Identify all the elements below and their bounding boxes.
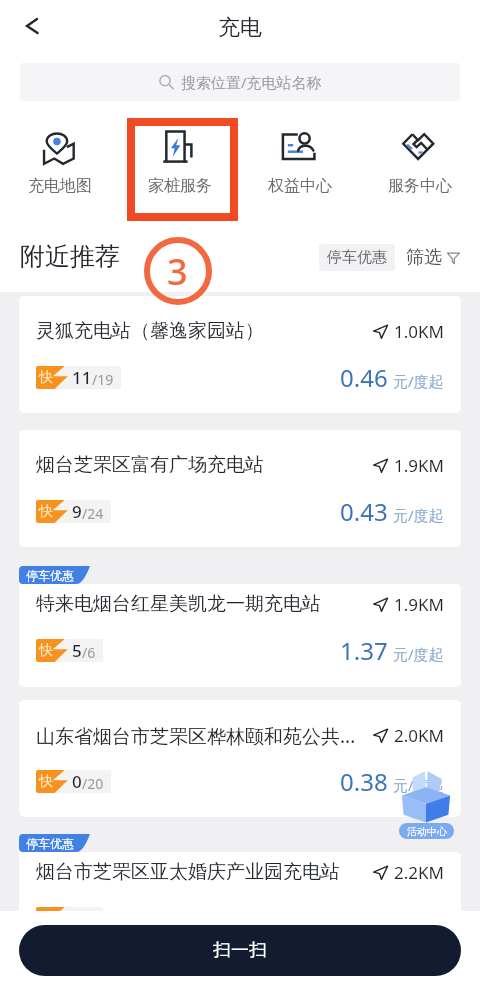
staticText: 服务中心	[388, 176, 452, 196]
staticText: 快	[39, 642, 53, 660]
staticText: 3	[167, 247, 188, 296]
staticText: /20	[82, 774, 104, 793]
staticText: 停车优惠	[26, 568, 74, 583]
staticText: 3	[72, 907, 82, 930]
button[interactable]: 充电地图	[0, 127, 120, 196]
staticText: 快	[39, 773, 53, 791]
staticText: 0	[72, 770, 82, 793]
button[interactable]: 烟台芝罘区富有广场充电站	[19, 430, 461, 547]
staticText: 0.45	[340, 902, 388, 935]
staticText: 筛选	[406, 246, 442, 269]
staticText: 家桩服务	[148, 176, 212, 196]
staticText: 1.0KM	[394, 320, 444, 343]
staticText: 0.46	[340, 361, 388, 394]
staticText: 2.0KM	[394, 724, 444, 747]
button[interactable]: 服务中心	[360, 127, 480, 196]
staticText: 1.37	[340, 634, 388, 667]
staticText: 充电	[218, 14, 262, 42]
button[interactable]: 家桩服务	[120, 127, 240, 196]
staticText: 1.9KM	[394, 454, 444, 477]
staticText: 灵狐充电站（馨逸家园站）	[36, 319, 367, 343]
staticText: /8	[82, 911, 96, 930]
button[interactable]: 搜索位置/充电站名称	[20, 63, 460, 101]
button[interactable]: 活动中心	[398, 768, 454, 832]
staticText: 活动中心	[407, 825, 447, 838]
button[interactable]: 特来电烟台红星美凯龙一期充电站	[19, 584, 461, 687]
staticText: 烟台芝罘区富有广场充电站	[36, 453, 367, 477]
staticText: 山东省烟台市芝罘区桦林颐和苑公共...	[36, 723, 367, 747]
staticText: 快	[39, 503, 53, 521]
button[interactable]: 筛选	[406, 246, 460, 269]
staticText: 扫一扫	[213, 939, 267, 962]
staticText: /6	[82, 643, 96, 662]
staticText: 权益中心	[268, 176, 332, 196]
staticText: 停车优惠	[26, 836, 74, 851]
button[interactable]: Back	[12, 6, 52, 46]
staticText: 2.2KM	[394, 861, 444, 884]
staticText: 快	[39, 369, 53, 387]
staticText: 元/度起	[393, 775, 444, 795]
staticText: 元/度起	[393, 912, 444, 932]
staticText: 元/度起	[393, 644, 444, 664]
staticText: 0.43	[340, 495, 388, 528]
button[interactable]: 灵狐充电站（馨逸家园站）	[19, 296, 461, 413]
staticText: 1.9KM	[394, 593, 444, 616]
button[interactable]: 烟台市芝罘区亚太婚庆产业园充电站	[19, 852, 461, 955]
button[interactable]: 扫一扫	[19, 925, 461, 976]
button[interactable]: 停车优惠	[319, 244, 395, 271]
staticText: 元/度起	[393, 505, 444, 525]
button[interactable]: 权益中心	[240, 127, 360, 196]
staticText: 0.38	[340, 765, 388, 798]
staticText: 元/度起	[393, 371, 444, 391]
staticText: 5	[72, 639, 82, 662]
staticText: /24	[82, 504, 104, 523]
staticText: 9	[72, 500, 82, 523]
staticText: 11	[72, 366, 92, 389]
staticText: 快	[39, 910, 53, 928]
staticText: 附近推荐	[20, 241, 120, 272]
staticText: 搜索位置/充电站名称	[181, 72, 322, 92]
staticText: 特来电烟台红星美凯龙一期充电站	[36, 592, 367, 616]
staticText: 烟台市芝罘区亚太婚庆产业园充电站	[36, 860, 367, 884]
staticText: /19	[92, 370, 114, 389]
staticText: 充电地图	[28, 176, 92, 196]
staticText: 停车优惠	[327, 248, 387, 267]
button[interactable]: 山东省烟台市芝罘区桦林颐和苑公共...	[19, 700, 461, 817]
